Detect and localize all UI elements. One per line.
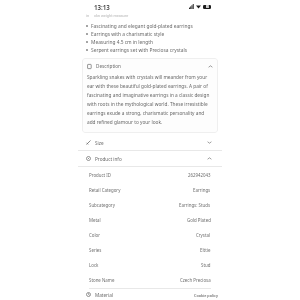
staticText: Lock bbox=[89, 262, 99, 268]
staticText: 262942043 bbox=[188, 172, 211, 178]
staticText: Serpent earrings set with Preciosa cryst… bbox=[91, 47, 187, 54]
staticText: Subcategory bbox=[89, 202, 115, 208]
staticText: in bbox=[86, 13, 90, 18]
staticText: 13:13 bbox=[94, 3, 110, 11]
staticText: 85 bbox=[206, 5, 209, 9]
staticText: Fascinating and elegant gold-plated earr… bbox=[91, 23, 193, 30]
staticText: Retail Category bbox=[89, 187, 121, 193]
other: Expand bbox=[207, 140, 212, 145]
staticText: Earrings bbox=[193, 187, 211, 193]
staticText: Measuring 4.5 cm in length bbox=[91, 39, 154, 46]
staticText: Earrings: Studs bbox=[179, 202, 211, 208]
staticText: Stud bbox=[201, 262, 211, 268]
staticText: Gold Plated bbox=[187, 217, 211, 223]
button[interactable]: Cookie policy bbox=[192, 291, 220, 300]
staticText: Earrings with a charismatic style bbox=[91, 31, 165, 38]
staticText: Stone Name bbox=[89, 277, 115, 283]
staticText: Size bbox=[95, 140, 104, 146]
staticText: Crystal bbox=[196, 232, 211, 238]
staticText: Czech Preciosa bbox=[180, 277, 211, 283]
staticText: Product info bbox=[95, 156, 122, 162]
button[interactable]: Material bbox=[78, 289, 222, 300]
button[interactable]: Product info bbox=[78, 151, 222, 166]
staticText: Cookie policy bbox=[194, 293, 218, 298]
staticText: Product ID bbox=[89, 172, 111, 178]
staticText: Elttie bbox=[200, 247, 211, 253]
staticText: Material bbox=[95, 292, 114, 298]
staticText: Series bbox=[89, 247, 102, 253]
button[interactable]: Description bbox=[87, 63, 213, 69]
staticText: Metal bbox=[89, 217, 101, 223]
staticText: Color bbox=[89, 232, 101, 238]
other: Collapse bbox=[207, 156, 212, 161]
other: Expand bbox=[207, 292, 212, 297]
other: Collapse bbox=[208, 64, 213, 69]
staticText: Description bbox=[96, 63, 121, 69]
button[interactable]: Size bbox=[78, 135, 222, 150]
staticText: xkn weight measure bbox=[94, 13, 129, 18]
staticText: Sparkling snakes with crystals will mean… bbox=[87, 74, 213, 126]
